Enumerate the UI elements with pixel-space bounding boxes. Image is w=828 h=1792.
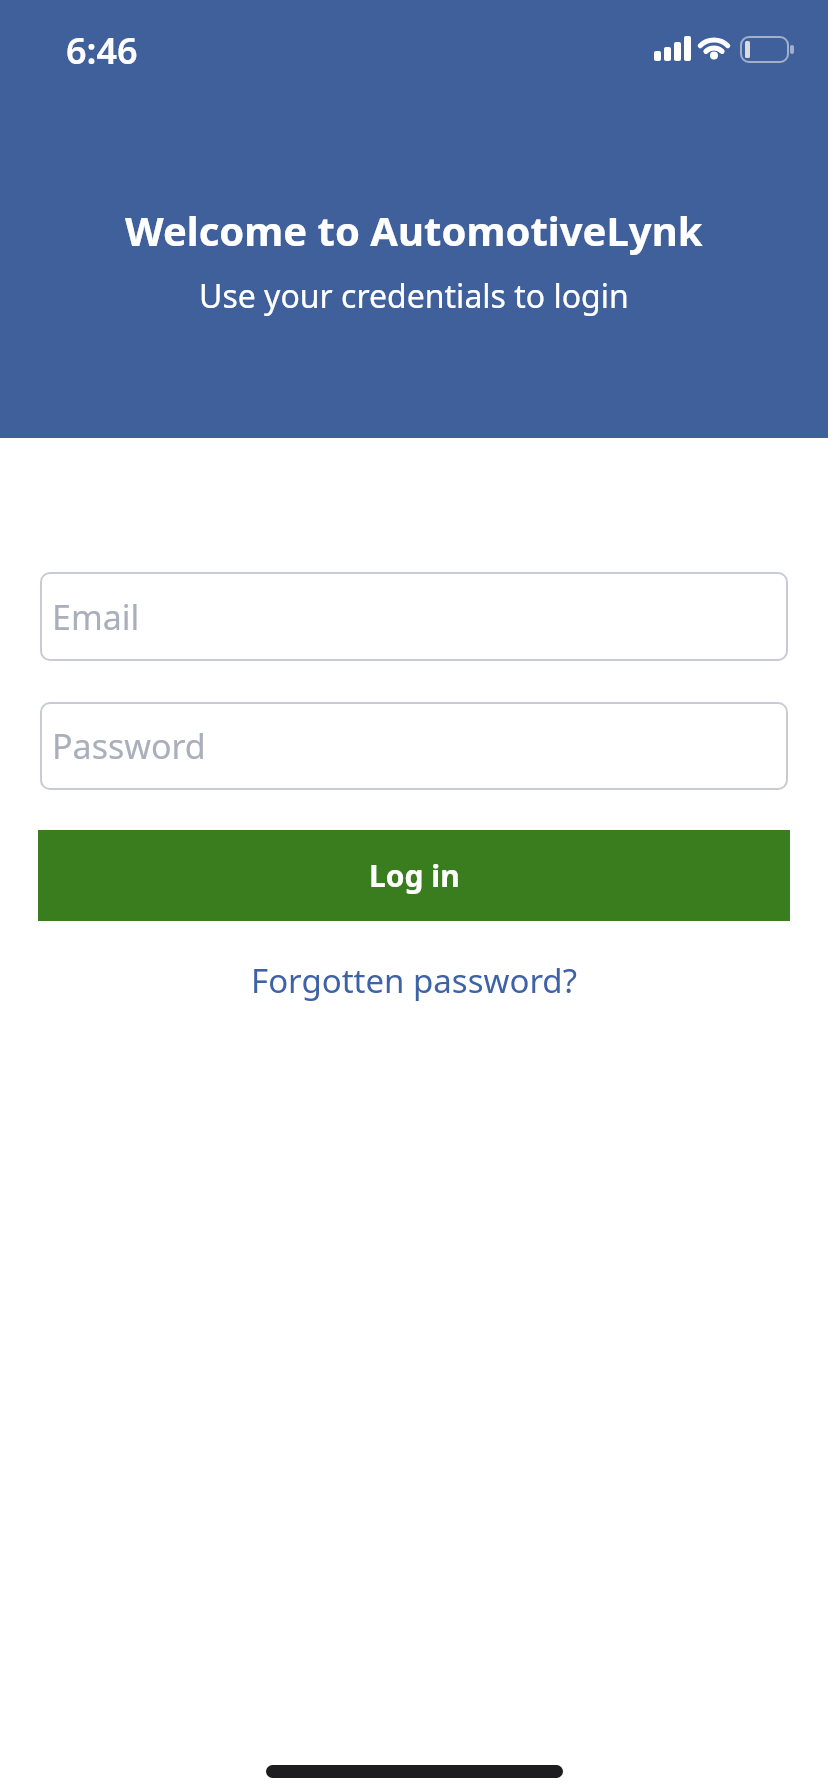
button[interactable]: Email [40,572,788,661]
staticText: Password [52,723,206,769]
staticText: Welcome to AutomotiveLynk [125,203,703,257]
button[interactable]: Password [40,702,788,790]
button[interactable]: Log in [38,830,790,921]
staticText: Email [52,594,140,640]
staticText: Forgotten password? [251,958,577,1003]
staticText: Log in [369,855,460,896]
button[interactable]: Forgotten password? [251,958,577,1003]
staticText: 6:46 [66,26,138,75]
staticText: Use your credentials to login [199,274,629,318]
